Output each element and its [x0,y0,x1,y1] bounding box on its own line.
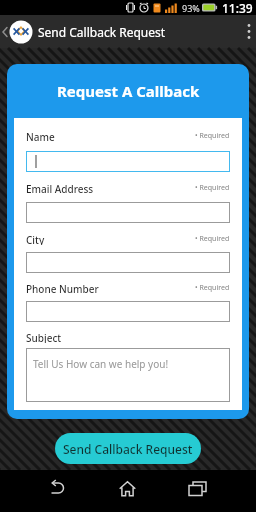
staticText: • Required [195,131,230,141]
staticText: City [26,233,45,245]
staticText: Email Address [26,182,94,194]
staticText: • Required [195,283,230,293]
button[interactable] [242,15,256,48]
staticText: Request A Callback [57,81,200,101]
staticText: Phone Number [26,282,99,294]
staticText: Subject [26,331,62,343]
button[interactable] [9,20,33,44]
staticText: 93% [182,2,200,14]
button[interactable] [106,470,148,512]
staticText: Tell Us How can we help you! [33,357,169,371]
staticText: 11:39 [222,0,253,15]
staticText: Name [26,130,55,142]
button[interactable]: Tell Us How can we help you! [26,348,230,402]
button[interactable] [26,202,230,223]
button[interactable] [26,151,230,172]
staticText: Send Callback Request [38,24,166,40]
button[interactable] [176,470,218,512]
staticText: Send Callback Request [63,441,193,457]
button[interactable]: Send Callback Request [55,433,201,464]
button[interactable] [26,301,230,322]
button[interactable] [26,252,230,273]
staticText: • Required [195,183,230,193]
button[interactable] [36,470,78,512]
staticText: • Required [195,234,230,244]
